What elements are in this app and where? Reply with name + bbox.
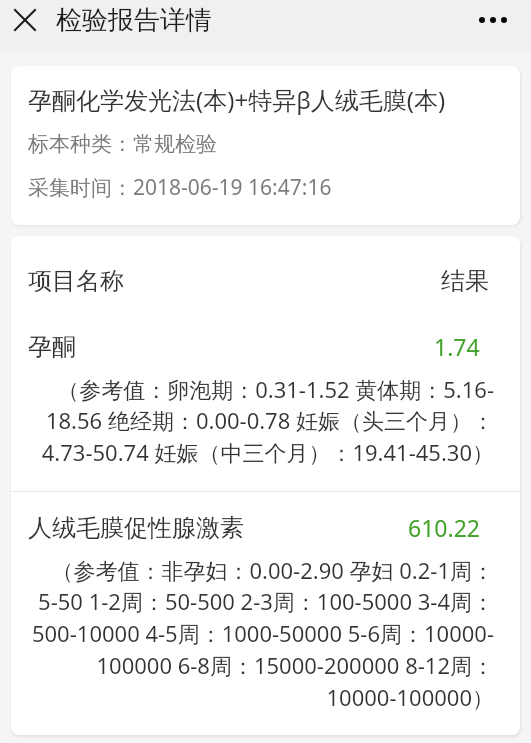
staticText: 标本种类：常规检验: [28, 131, 217, 157]
staticText: （参考值：非孕妇：0.00-2.90 孕妇 0.2-1周： 5-50 1-2周：…: [28, 555, 494, 713]
staticText: 孕酮: [28, 332, 76, 362]
staticText: （参考值：卵泡期：0.31-1.52 黄体期：5.16- 18.56 绝经期：0…: [28, 374, 494, 468]
staticText: 人绒毛膜促性腺激素: [28, 513, 244, 543]
staticText: 结果: [441, 266, 489, 296]
staticText: 孕酮化学发光法(本)+特异β人绒毛膜(本): [28, 83, 446, 116]
staticText: 检验报告详情: [56, 4, 212, 37]
staticText: 项目名称: [28, 266, 124, 296]
button[interactable]: More options: [473, 0, 513, 40]
staticText: 610.22: [408, 512, 480, 543]
staticText: 1.74: [434, 331, 480, 362]
staticText: 采集时间：2018-06-19 16:47:16: [28, 173, 332, 202]
button[interactable]: Close: [5, 0, 45, 40]
